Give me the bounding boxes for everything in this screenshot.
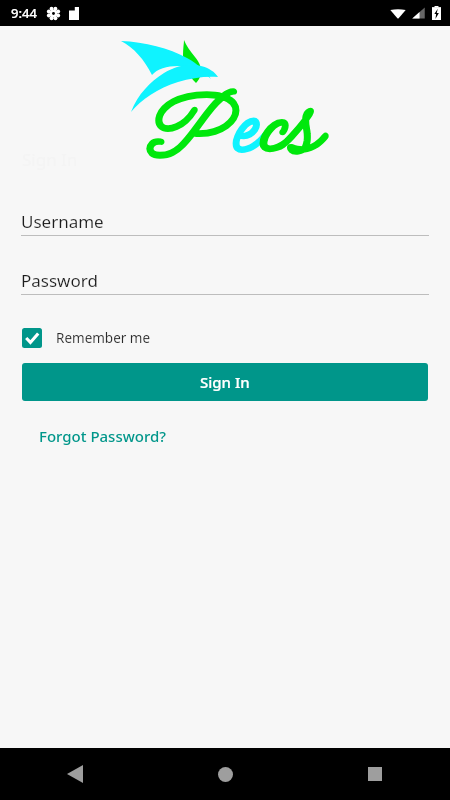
staticText: Password xyxy=(21,269,98,292)
staticText: Sign In xyxy=(200,372,250,392)
staticText: Remember me xyxy=(56,329,151,347)
button[interactable]: Home xyxy=(150,748,300,800)
staticText: Forgot Password? xyxy=(39,426,167,446)
button[interactable]: Remember me xyxy=(22,328,151,348)
staticText: Username xyxy=(21,210,104,233)
button[interactable]: Forgot Password? xyxy=(39,426,167,446)
button[interactable]: Recent apps xyxy=(300,748,450,800)
button[interactable]: Back xyxy=(0,748,150,800)
staticText: 9:44 xyxy=(11,4,37,22)
button[interactable]: Sign In xyxy=(22,363,428,401)
